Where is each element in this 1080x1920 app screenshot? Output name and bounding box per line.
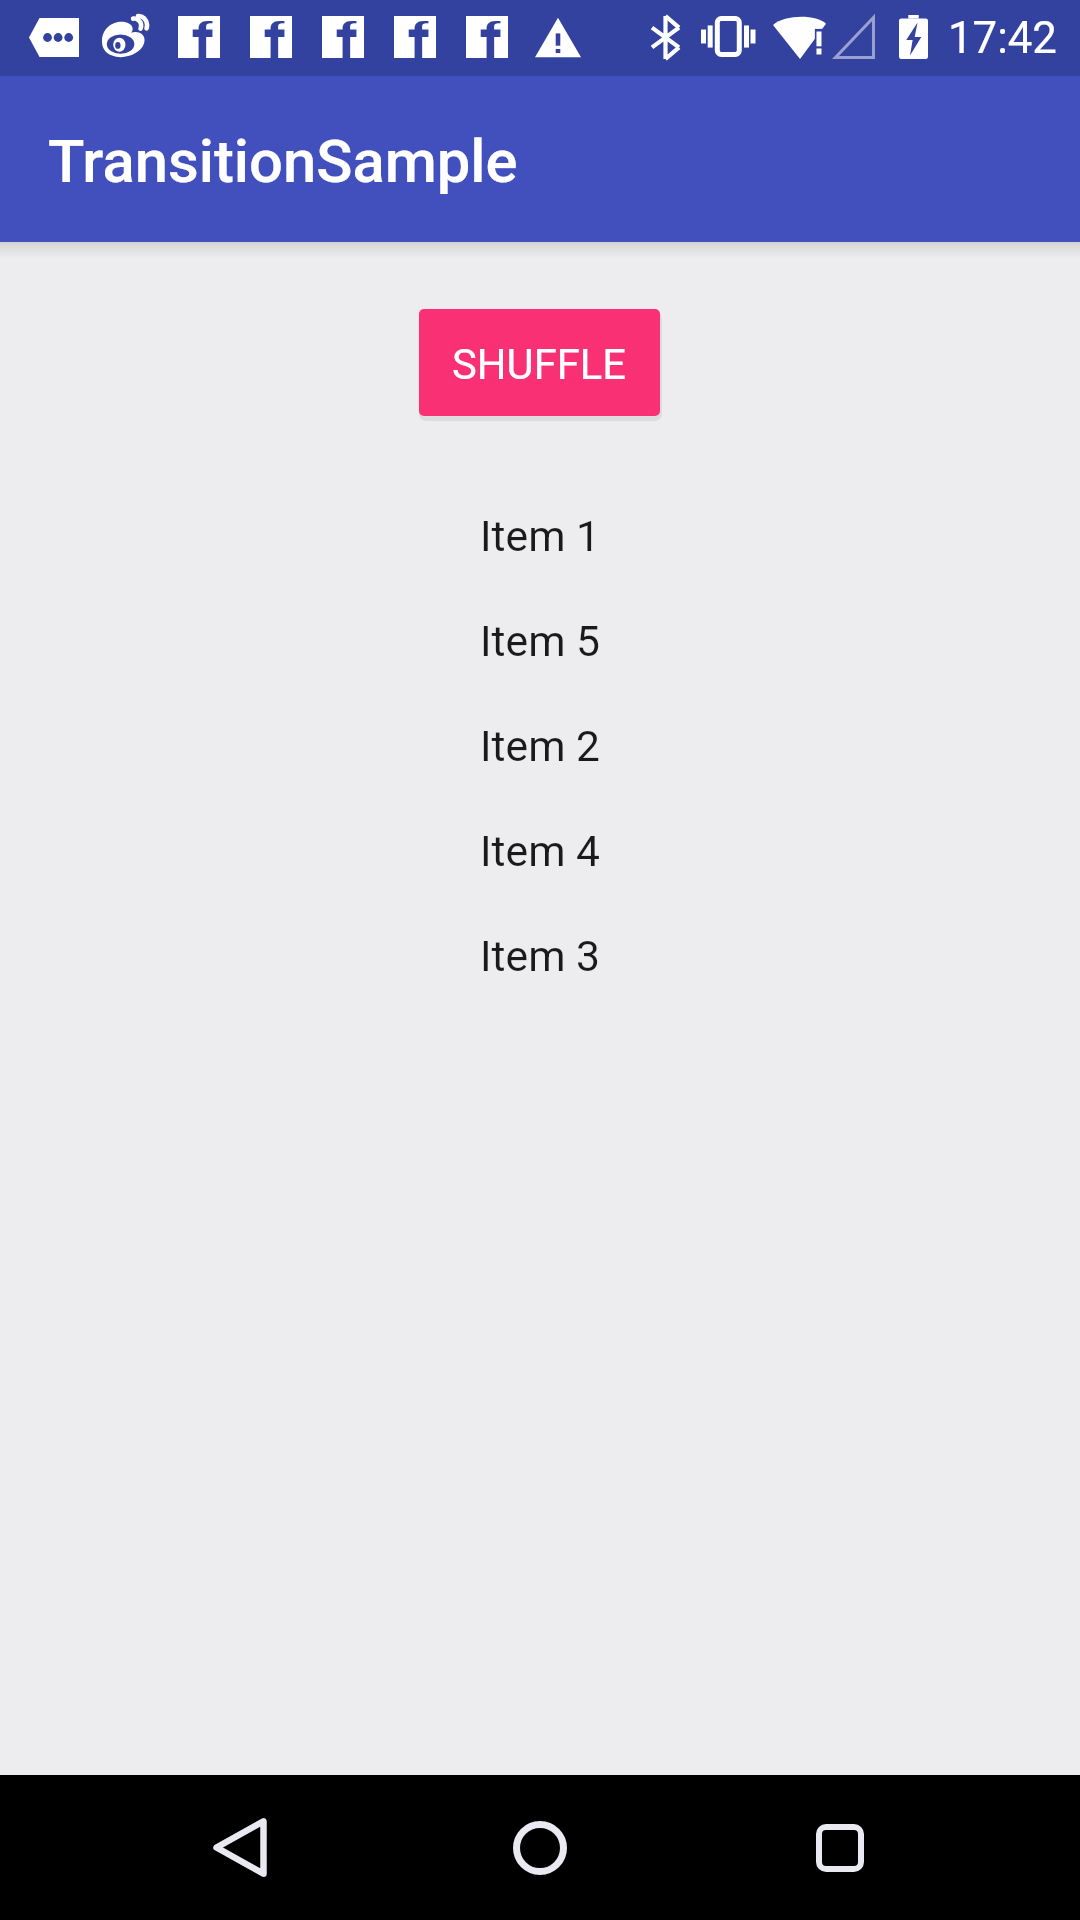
staticText: Item 4 — [480, 826, 600, 876]
button[interactable]: Item 4 — [0, 798, 1080, 903]
staticText: Item 3 — [480, 931, 600, 981]
button[interactable]: Home — [465, 1775, 615, 1920]
staticText: SHUFFLE — [452, 340, 627, 389]
button[interactable]: Recents — [765, 1775, 915, 1920]
staticText: TransitionSample — [48, 127, 518, 197]
button[interactable]: SHUFFLE — [419, 309, 660, 416]
button[interactable]: Item 2 — [0, 693, 1080, 798]
staticText: Item 2 — [480, 721, 600, 771]
staticText: Item 5 — [480, 616, 600, 666]
staticText: 17:42 — [948, 12, 1057, 63]
button[interactable]: Back — [165, 1775, 315, 1920]
staticText: Item 1 — [480, 511, 600, 561]
button[interactable]: Item 5 — [0, 588, 1080, 693]
button[interactable]: Item 1 — [0, 483, 1080, 588]
button[interactable]: Item 3 — [0, 903, 1080, 1008]
